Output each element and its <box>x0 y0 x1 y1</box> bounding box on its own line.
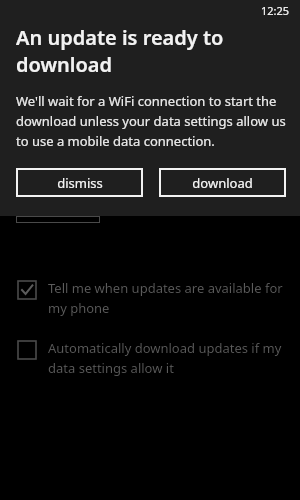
button[interactable]: Unchecked checkbox <box>18 339 284 377</box>
staticText: download <box>192 174 253 192</box>
other: Unchecked checkbox <box>18 341 36 359</box>
button[interactable]: download <box>159 168 286 197</box>
staticText: 12:25 <box>261 3 290 18</box>
staticText: Tell me when updates are available for m… <box>48 279 284 317</box>
staticText: An update is ready to download <box>16 24 286 78</box>
other: Checked checkbox <box>18 281 36 299</box>
staticText: Automatically download updates if my dat… <box>48 339 284 377</box>
button[interactable]: dismiss <box>16 168 143 197</box>
button[interactable]: Checked checkbox <box>18 279 284 317</box>
staticText: dismiss <box>57 174 103 192</box>
button[interactable] <box>16 216 100 223</box>
staticText: We'll wait for a WiFi connection to star… <box>16 92 286 150</box>
